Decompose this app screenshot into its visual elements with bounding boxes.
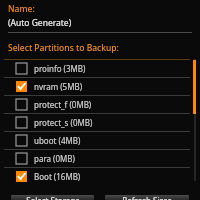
staticText: Refresh Sizes: [122, 195, 172, 200]
staticText: Boot (16MB): [34, 171, 81, 182]
staticText: protect_s (0MB): [34, 117, 93, 128]
staticText: proinfo (3MB): [34, 63, 86, 74]
staticText: Select Storage: [26, 195, 80, 200]
button[interactable]: Unchecked: [0, 96, 200, 113]
button[interactable]: Refresh Sizes: [105, 195, 189, 200]
other: Unchecked: [16, 153, 27, 164]
button[interactable]: (Auto Generate): [0, 17, 200, 29]
button[interactable]: Checked: [0, 78, 200, 95]
button[interactable]: Unchecked: [0, 150, 200, 167]
button[interactable]: Unchecked: [0, 132, 200, 149]
staticText: protect_f (0MB): [34, 99, 92, 110]
staticText: uboot (4MB): [34, 135, 81, 146]
other: Checked: [16, 81, 27, 92]
button[interactable]: Checked: [0, 168, 200, 185]
other: Unchecked: [16, 63, 27, 74]
other: Checked: [16, 171, 27, 182]
button[interactable]: Unchecked: [0, 114, 200, 131]
other: Unchecked: [16, 99, 27, 110]
staticText: nvram (5MB): [34, 81, 83, 92]
staticText: Select Partitions to Backup:: [8, 42, 119, 54]
other: Unchecked: [16, 117, 27, 128]
button[interactable]: Select Storage: [11, 195, 94, 200]
staticText: Name:: [8, 3, 35, 15]
staticText: (Auto Generate): [8, 17, 72, 29]
staticText: para (0MB): [34, 153, 75, 164]
other: Unchecked: [16, 135, 27, 146]
button[interactable]: Unchecked: [0, 60, 200, 77]
